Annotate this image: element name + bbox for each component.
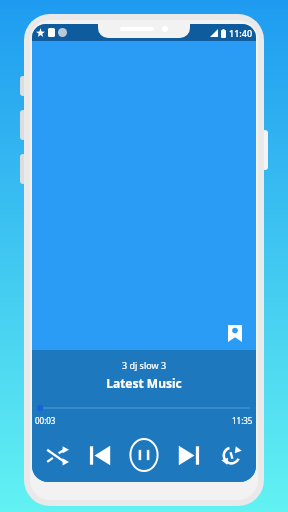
button[interactable]: Repeat xyxy=(212,436,250,474)
staticText: 00:03 xyxy=(35,415,56,426)
staticText: 11:40 xyxy=(229,27,253,39)
staticText: 11:35 xyxy=(232,415,253,426)
staticText: 3 dj slow 3 xyxy=(32,359,256,371)
button[interactable]: Bookmark xyxy=(224,322,246,344)
button[interactable]: Shuffle xyxy=(38,436,76,474)
staticText: Latest Music xyxy=(32,375,256,391)
button[interactable]: Seek bar xyxy=(32,403,256,413)
button[interactable]: Next xyxy=(169,436,207,474)
button[interactable]: Pause xyxy=(124,435,164,475)
button[interactable]: Previous xyxy=(81,436,119,474)
